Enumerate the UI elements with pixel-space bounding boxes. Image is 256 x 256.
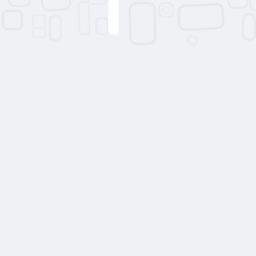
button[interactable]: Search <box>42 0 70 10</box>
button[interactable]: Filter <box>50 16 61 40</box>
button[interactable]: Back <box>9 0 30 6</box>
button[interactable]: Settings <box>250 0 256 10</box>
button[interactable]: Menu <box>3 11 22 29</box>
button[interactable]: More <box>228 0 248 8</box>
button[interactable]: Banner <box>179 5 223 29</box>
button[interactable]: Card <box>130 3 155 44</box>
button[interactable]: Share <box>243 14 255 40</box>
